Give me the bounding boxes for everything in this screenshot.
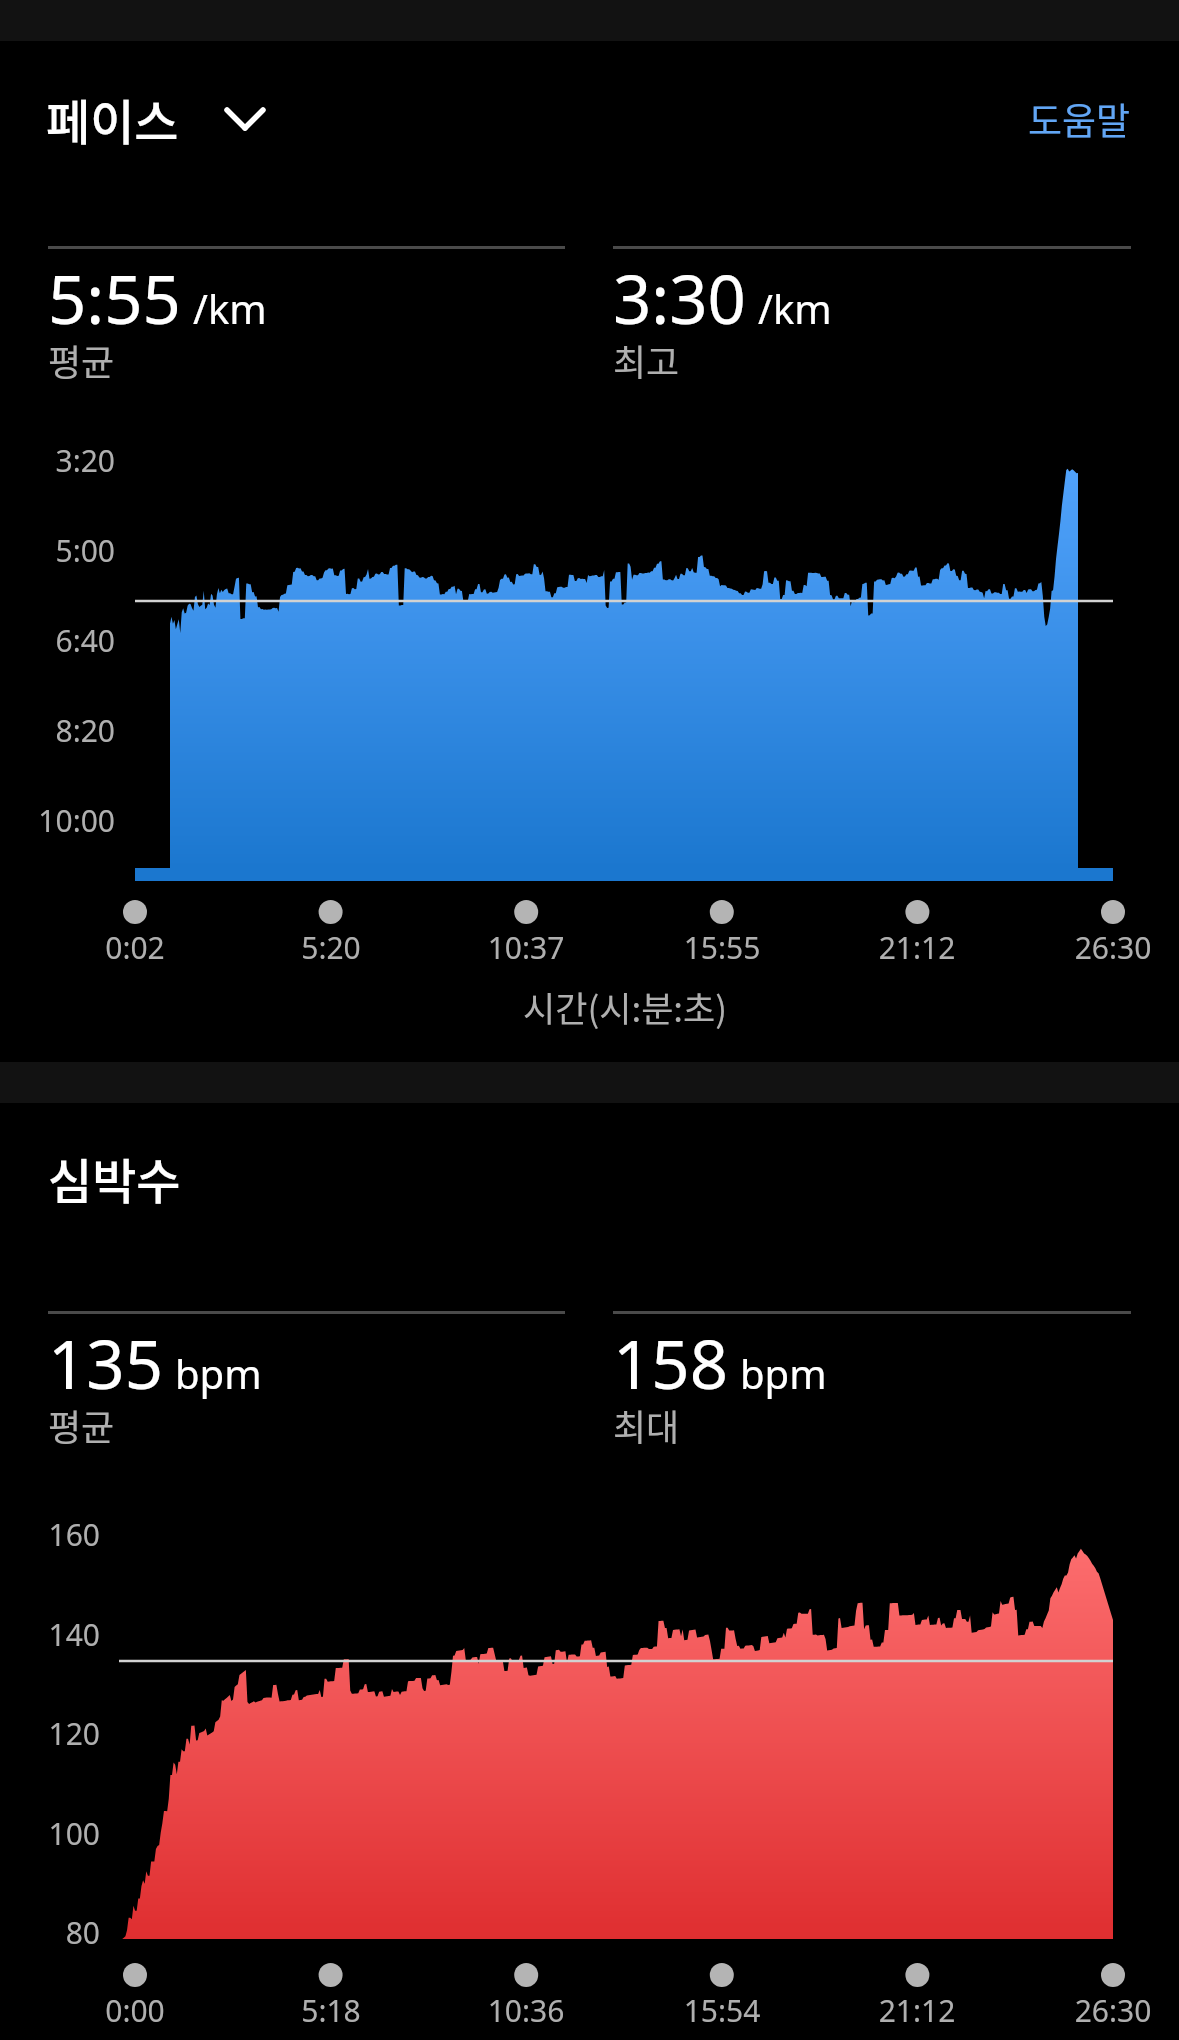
staticText: bpm xyxy=(175,1346,262,1400)
staticText: 135 xyxy=(48,1317,163,1408)
staticText: 5:55 xyxy=(48,252,181,343)
staticText: 26:30 xyxy=(1023,927,1179,968)
staticText: 최대 xyxy=(613,1399,680,1451)
staticText: 21:12 xyxy=(827,927,1007,968)
staticText: 120 xyxy=(0,1713,100,1754)
staticText: 15:55 xyxy=(632,927,812,968)
staticText: bpm xyxy=(740,1346,827,1400)
staticText: 5:18 xyxy=(241,1990,421,2031)
staticText: /km xyxy=(193,281,267,335)
staticText: 160 xyxy=(0,1514,100,1555)
staticText: 최고 xyxy=(613,334,680,386)
staticText: 80 xyxy=(0,1912,100,1953)
staticText: 시간(시:분:초) xyxy=(523,981,728,1032)
staticText: 15:54 xyxy=(632,1990,812,2031)
staticText: 심박수 xyxy=(48,1143,181,1213)
staticText: 10:00 xyxy=(0,800,115,841)
staticText: 5:20 xyxy=(241,927,421,968)
staticText: 100 xyxy=(0,1813,100,1854)
staticText: 평균 xyxy=(48,1399,115,1451)
staticText: 3:20 xyxy=(0,440,115,481)
staticText: 5:00 xyxy=(0,530,115,571)
staticText: 158 xyxy=(613,1317,728,1408)
staticText: 140 xyxy=(0,1614,100,1655)
staticText: 10:37 xyxy=(436,927,616,968)
staticText: 0:00 xyxy=(45,1990,225,2031)
staticText: 페이스 xyxy=(46,84,179,154)
staticText: 26:30 xyxy=(1023,1990,1179,2031)
staticText: 평균 xyxy=(48,334,115,386)
staticText: 3:30 xyxy=(613,252,746,343)
staticText: 6:40 xyxy=(0,620,115,661)
staticText: 도움말 xyxy=(1028,92,1131,146)
staticText: /km xyxy=(758,281,832,335)
button[interactable]: 도움말 xyxy=(1028,82,1131,156)
staticText: 0:02 xyxy=(45,927,225,968)
staticText: 10:36 xyxy=(436,1990,616,2031)
staticText: 21:12 xyxy=(827,1990,1007,2031)
button[interactable]: 페이스, 측정 항목 선택 xyxy=(46,84,281,154)
staticText: 8:20 xyxy=(0,710,115,751)
